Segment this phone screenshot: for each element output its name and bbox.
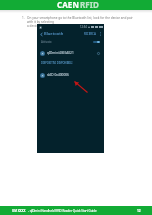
button[interactable]: Attivato xyxy=(41,38,100,46)
staticText: Attivato xyxy=(41,40,52,44)
staticText: On your smartphone go to the Bluetooth l… xyxy=(27,16,136,28)
staticText: - qIDmini Handheld RFID Reader Quick Sta… xyxy=(28,209,97,213)
staticText: UM XXXX xyxy=(12,209,26,213)
staticText: 1. xyxy=(22,16,25,20)
staticText: qIDmini4365A021 xyxy=(47,51,74,55)
staticText: RFID xyxy=(80,0,100,9)
staticText: 12 xyxy=(137,209,141,213)
button[interactable]: More options xyxy=(98,32,102,36)
button[interactable]: skID 0x400006 xyxy=(40,70,100,80)
button[interactable]: Back xyxy=(38,31,44,37)
staticText: RICERCA xyxy=(84,32,96,36)
staticText: Bluetooth xyxy=(44,31,64,37)
button[interactable]: RICERCA xyxy=(83,32,97,36)
staticText: CAEN xyxy=(57,0,80,9)
staticText: DISPOSITIVI DISPONIBILI xyxy=(41,61,73,65)
staticText: skID 0x400006 xyxy=(47,73,69,77)
button[interactable]: Settings xyxy=(96,51,100,55)
staticText: 12:34 xyxy=(80,25,87,29)
button[interactable]: qIDmini4365A021 xyxy=(40,48,100,58)
